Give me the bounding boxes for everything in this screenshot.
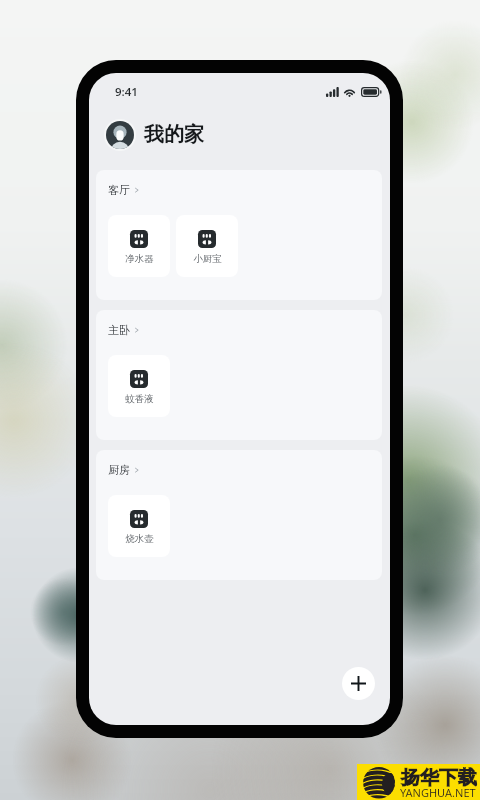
staticText: YANGHUA.NET [400, 785, 476, 800]
button[interactable]: 主卧 [108, 323, 139, 337]
button[interactable]: 净水器 [108, 215, 170, 277]
staticText: 我的家 [144, 122, 204, 147]
staticText: 9:41 [115, 84, 138, 100]
staticText: 厨房 [108, 463, 130, 477]
staticText: 蚊香液 [125, 393, 154, 405]
staticText: 扬华下载 [401, 766, 477, 790]
button[interactable]: Add device [342, 667, 375, 700]
staticText: 净水器 [125, 253, 154, 265]
button[interactable]: Profile [104, 119, 136, 151]
staticText: 客厅 [108, 183, 130, 197]
button[interactable]: 小厨宝 [176, 215, 238, 277]
staticText: 小厨宝 [193, 253, 222, 265]
button[interactable]: 厨房 [108, 463, 139, 477]
staticText: 主卧 [108, 323, 130, 337]
button[interactable]: 蚊香液 [108, 355, 170, 417]
button[interactable]: 客厅 [108, 183, 139, 197]
button[interactable]: 烧水壶 [108, 495, 170, 557]
staticText: 烧水壶 [125, 533, 154, 545]
